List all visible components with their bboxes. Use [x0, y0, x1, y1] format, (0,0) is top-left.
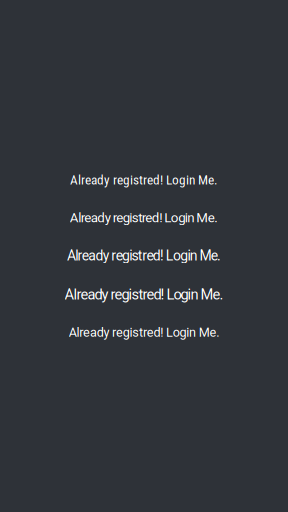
staticText: Already registred! Login Me.	[70, 210, 218, 225]
staticText: Already registred! Login Me.	[67, 247, 221, 264]
staticText: Already registred! Login Me.	[64, 286, 223, 303]
staticText: Already registred! Login Me.	[70, 172, 218, 188]
staticText: Already registred! Login Me.	[69, 325, 219, 340]
